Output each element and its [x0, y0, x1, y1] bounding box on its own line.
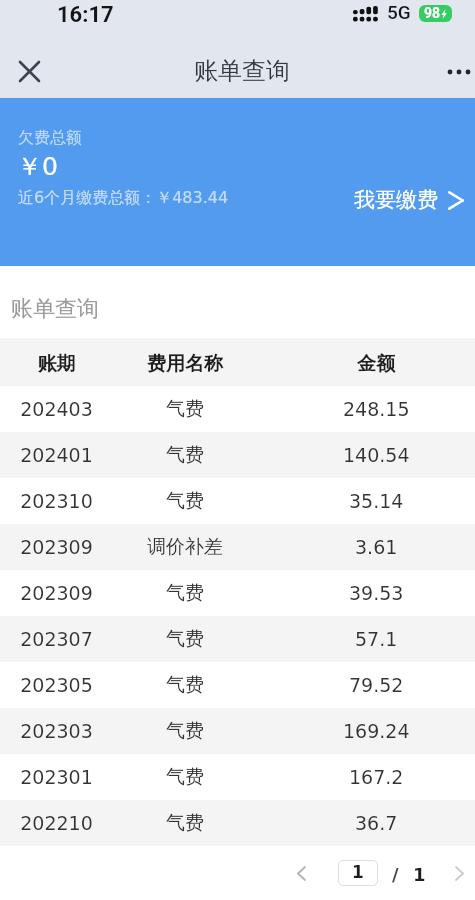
- staticText: 248.15: [343, 398, 410, 420]
- staticText: 气费: [116, 811, 254, 835]
- button[interactable]: 1: [338, 860, 378, 886]
- staticText: 气费: [116, 581, 254, 605]
- staticText: 气费: [116, 627, 254, 651]
- button[interactable]: 202310: [0, 478, 475, 524]
- staticText: 气费: [116, 673, 254, 697]
- button[interactable]: 我要缴费: [348, 182, 470, 218]
- staticText: 5G: [387, 1, 411, 23]
- staticText: /: [392, 864, 399, 885]
- staticText: 169.24: [343, 720, 410, 742]
- staticText: 202305: [0, 674, 113, 696]
- staticText: 气费: [116, 443, 254, 467]
- button[interactable]: 202210: [0, 800, 475, 846]
- staticText: 账单查询: [194, 56, 290, 86]
- staticText: 近6个月缴费总额：￥483.44: [18, 188, 229, 208]
- staticText: 金额: [357, 352, 395, 376]
- staticText: 气费: [116, 397, 254, 421]
- button[interactable]: 202403: [0, 386, 475, 432]
- button[interactable]: 202307: [0, 616, 475, 662]
- button[interactable]: 202305: [0, 662, 475, 708]
- staticText: ￥0: [17, 151, 58, 182]
- staticText: 202303: [0, 720, 113, 742]
- staticText: 我要缴费: [354, 187, 438, 213]
- staticText: 39.53: [349, 582, 404, 604]
- staticText: 16:17: [57, 2, 114, 28]
- button[interactable]: 202309: [0, 570, 475, 616]
- staticText: 气费: [116, 489, 254, 513]
- staticText: 气费: [116, 765, 254, 789]
- staticText: 202301: [0, 766, 113, 788]
- staticText: 费用名称: [116, 352, 254, 376]
- staticText: 57.1: [355, 628, 398, 650]
- button[interactable]: Next page: [444, 857, 475, 889]
- staticText: 167.2: [349, 766, 404, 788]
- staticText: 账单查询: [11, 295, 99, 323]
- staticText: 1: [352, 862, 364, 882]
- staticText: 79.52: [349, 674, 404, 696]
- button[interactable]: 202401: [0, 432, 475, 478]
- button[interactable]: 202301: [0, 754, 475, 800]
- staticText: 3.61: [355, 536, 398, 558]
- staticText: 202309: [0, 536, 113, 558]
- staticText: 调价补差: [116, 535, 254, 559]
- staticText: 账期: [0, 352, 113, 376]
- button[interactable]: More options: [428, 52, 470, 90]
- staticText: 202309: [0, 582, 113, 604]
- staticText: 欠费总额: [18, 128, 82, 148]
- staticText: 98: [424, 5, 441, 21]
- staticText: 202210: [0, 812, 113, 834]
- staticText: 202403: [0, 398, 113, 420]
- staticText: 36.7: [355, 812, 398, 834]
- staticText: 1: [413, 864, 426, 885]
- button[interactable]: Previous page: [285, 857, 317, 889]
- staticText: 140.54: [343, 444, 410, 466]
- button[interactable]: 202303: [0, 708, 475, 754]
- staticText: 202307: [0, 628, 113, 650]
- staticText: 202401: [0, 444, 113, 466]
- staticText: 气费: [116, 719, 254, 743]
- staticText: 202310: [0, 490, 113, 512]
- button[interactable]: Close: [10, 52, 49, 91]
- staticText: 35.14: [349, 490, 404, 512]
- button[interactable]: 202309: [0, 524, 475, 570]
